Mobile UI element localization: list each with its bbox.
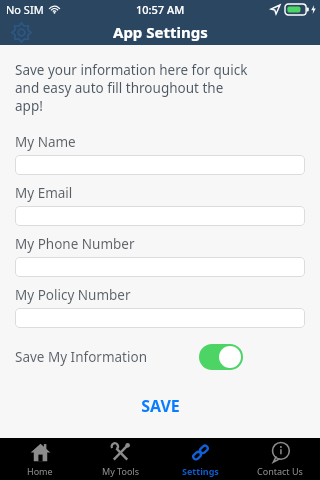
button[interactable]: Settings gear bbox=[9, 20, 33, 44]
button[interactable]: Save My Information toggle bbox=[199, 344, 243, 370]
staticText: My Policy Number bbox=[15, 286, 131, 304]
button[interactable]: My Tools bbox=[80, 438, 160, 480]
button[interactable]: My Phone Number bbox=[15, 257, 305, 277]
staticText: SAVE bbox=[141, 395, 180, 417]
staticText: 10:57 AM bbox=[136, 2, 185, 17]
staticText: Save your information here for quick and… bbox=[15, 61, 248, 115]
staticText: Settings bbox=[182, 465, 219, 477]
staticText: My Phone Number bbox=[15, 235, 135, 253]
button[interactable]: Home bbox=[0, 438, 80, 480]
button[interactable]: My Policy Number bbox=[15, 308, 305, 328]
staticText: My Name bbox=[15, 133, 76, 151]
staticText: My Email bbox=[15, 184, 73, 202]
staticText: Save My Information bbox=[15, 348, 147, 366]
staticText: My Tools bbox=[102, 465, 139, 477]
button[interactable]: Contact Us bbox=[240, 438, 320, 480]
staticText: Home bbox=[27, 465, 53, 477]
button[interactable]: SAVE bbox=[125, 390, 196, 422]
button[interactable]: Settings bbox=[160, 438, 240, 480]
staticText: No SIM bbox=[6, 2, 44, 17]
button[interactable]: My Email bbox=[15, 206, 305, 226]
staticText: Contact Us bbox=[257, 465, 303, 477]
button[interactable]: My Name bbox=[15, 155, 305, 175]
staticText: App Settings bbox=[113, 22, 208, 42]
